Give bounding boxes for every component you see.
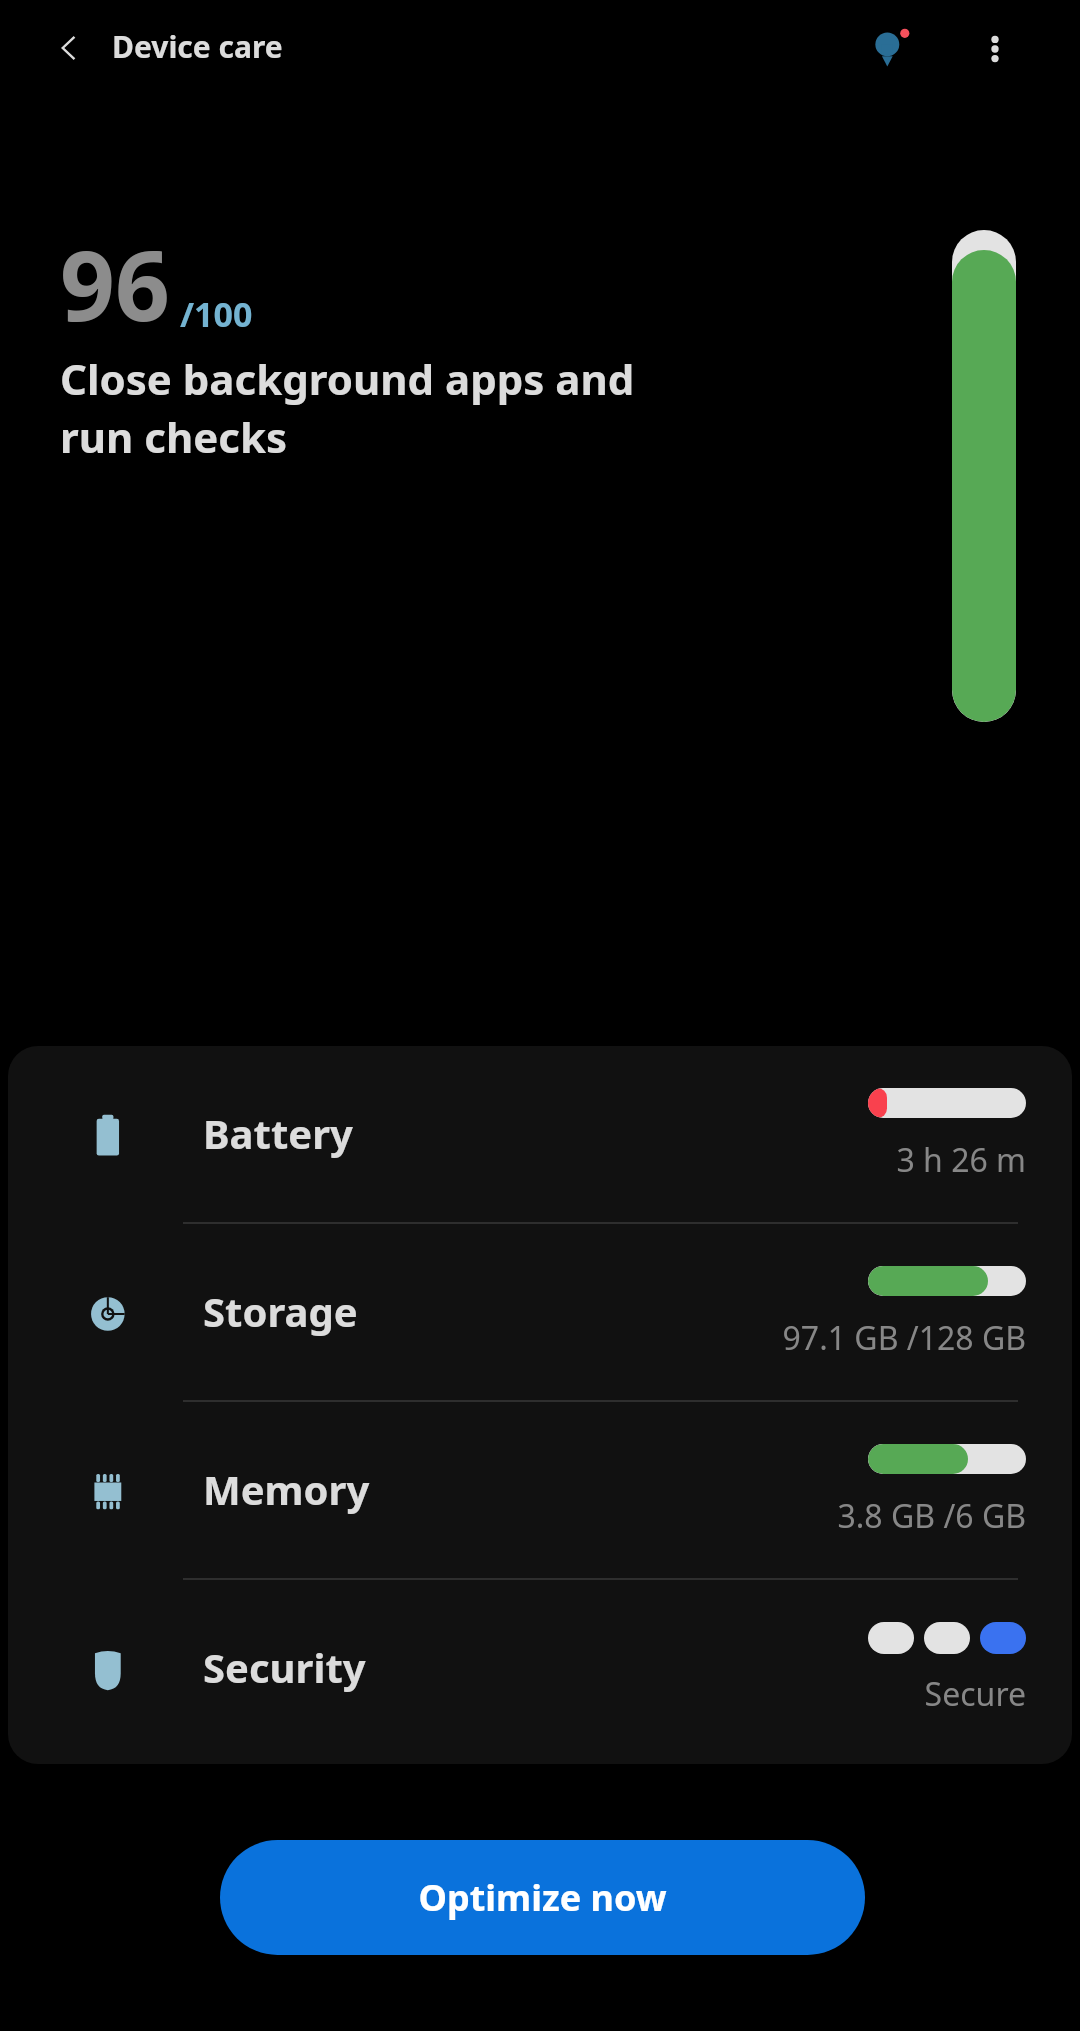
staticText: Memory	[203, 1462, 370, 1516]
staticText: 97.1 GB /128 GB	[608, 1316, 1026, 1360]
button[interactable]: Back	[48, 26, 92, 70]
staticText: Storage	[203, 1284, 358, 1338]
button[interactable]: Memory	[8, 1402, 1072, 1578]
button[interactable]: Security	[8, 1580, 1072, 1756]
staticText: 3.8 GB /6 GB	[608, 1494, 1026, 1538]
staticText: 96	[60, 218, 170, 349]
staticText: /100	[180, 291, 253, 337]
button[interactable]: Storage	[8, 1224, 1072, 1400]
staticText: Battery	[203, 1106, 353, 1160]
staticText: Security	[203, 1640, 366, 1694]
staticText: Close background apps and run checks	[60, 350, 700, 465]
staticText: Device care	[112, 26, 283, 67]
button[interactable]: Tips	[862, 20, 920, 78]
staticText: Secure	[608, 1672, 1026, 1716]
button[interactable]: Battery	[8, 1046, 1072, 1222]
staticText: 3 h 26 m	[608, 1138, 1026, 1182]
button[interactable]: Optimize now	[220, 1840, 865, 1955]
button[interactable]: More options	[966, 20, 1024, 78]
staticText: Optimize now	[418, 1873, 667, 1922]
